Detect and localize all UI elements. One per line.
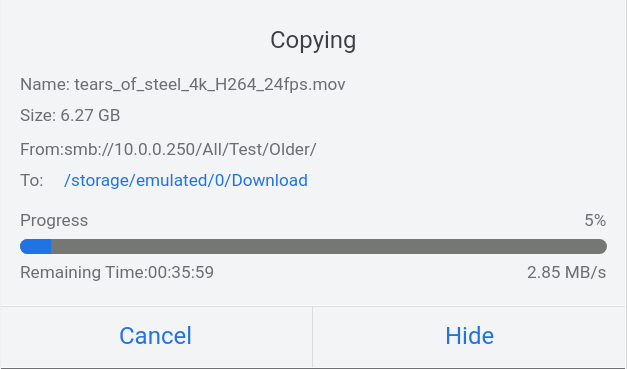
- button[interactable]: Cancel: [0, 307, 312, 367]
- staticText: Name: tears_of_steel_4k_H264_24fps.mov: [20, 74, 346, 94]
- staticText: Size: 6.27 GB: [20, 105, 121, 125]
- staticText: To:: [20, 170, 44, 190]
- button[interactable]: /storage/emulated/0/Download: [64, 170, 308, 190]
- staticText: 2.85 MB/s: [527, 262, 607, 282]
- staticText: 5%: [584, 210, 607, 230]
- staticText: Remaining Time:00:35:59: [20, 262, 215, 282]
- staticText: Cancel: [119, 322, 193, 350]
- staticText: Progress: [20, 210, 89, 230]
- staticText: Hide: [445, 322, 495, 350]
- button[interactable]: Hide: [313, 307, 627, 367]
- staticText: From:smb://10.0.0.250/All/Test/Older/: [20, 139, 317, 159]
- staticText: Copying: [270, 26, 357, 54]
